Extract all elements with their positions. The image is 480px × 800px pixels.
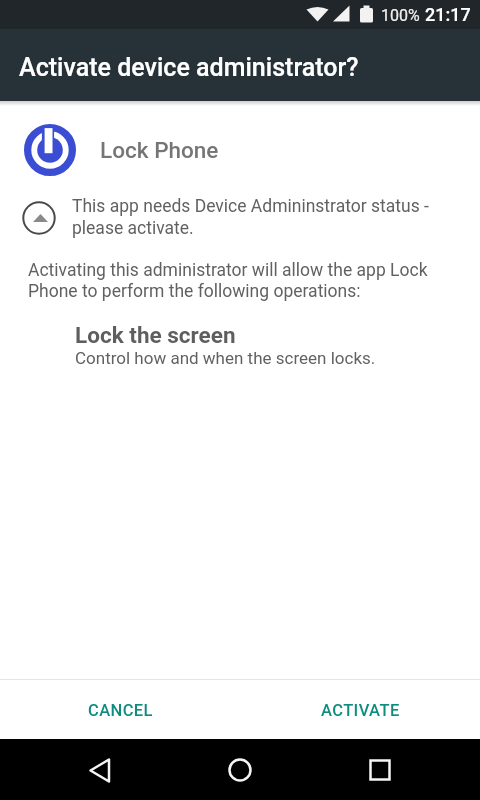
- button[interactable]: ACTIVATE: [240, 680, 480, 739]
- staticText: Control how and when the screen locks.: [75, 348, 376, 368]
- button[interactable]: [349, 739, 410, 800]
- staticText: 21:17: [425, 4, 471, 25]
- staticText: ACTIVATE: [321, 701, 400, 720]
- staticText: 100%: [381, 6, 420, 25]
- button[interactable]: [209, 739, 270, 800]
- staticText: This app needs Device Admininstrator sta…: [72, 196, 429, 239]
- button[interactable]: [69, 739, 130, 800]
- staticText: CANCEL: [88, 701, 153, 720]
- button[interactable]: CANCEL: [0, 680, 240, 739]
- staticText: Activating this administrator will allow…: [28, 260, 428, 302]
- staticText: Lock Phone: [100, 137, 219, 163]
- staticText: Activate device administrator?: [19, 53, 359, 82]
- staticText: Lock the screen: [75, 322, 236, 348]
